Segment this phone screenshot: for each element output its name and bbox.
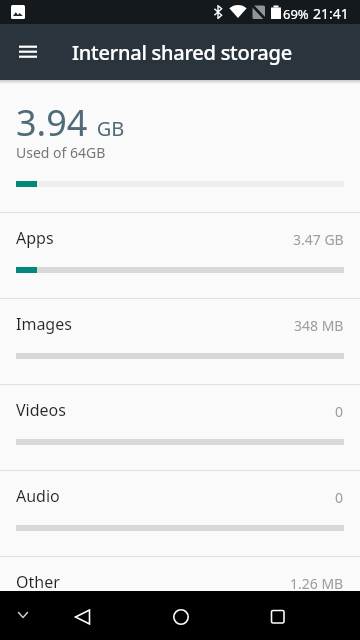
staticText: Used of 64GB xyxy=(16,143,106,162)
button[interactable]: Audio xyxy=(0,470,360,556)
button[interactable]: Images xyxy=(0,298,360,384)
staticText: 1.26 MB xyxy=(290,574,344,593)
staticText: Audio xyxy=(16,485,60,507)
button[interactable] xyxy=(247,595,307,635)
staticText: 69% xyxy=(283,5,309,23)
staticText: Other xyxy=(16,571,60,593)
staticText: Internal shared storage xyxy=(72,39,292,66)
staticText: Apps xyxy=(16,227,54,249)
staticText: 3.47 GB xyxy=(293,230,344,249)
button[interactable]: Videos xyxy=(0,384,360,470)
button[interactable] xyxy=(150,595,210,635)
button[interactable]: Apps xyxy=(0,212,360,298)
staticText: 3.94 GB xyxy=(16,98,125,147)
button[interactable] xyxy=(60,595,120,635)
staticText: 0 xyxy=(335,488,344,507)
staticText: Images xyxy=(16,313,72,335)
staticText: Videos xyxy=(16,399,66,421)
staticText: 348 MB xyxy=(294,316,344,335)
button[interactable] xyxy=(12,40,44,64)
staticText: 0 xyxy=(335,402,344,421)
button[interactable]: Other xyxy=(0,556,360,640)
staticText: 21:41 xyxy=(313,4,349,23)
